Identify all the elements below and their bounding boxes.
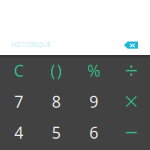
staticText: 6 bbox=[89, 122, 98, 143]
staticText: 4 bbox=[14, 122, 23, 143]
staticText: ) bbox=[57, 60, 62, 81]
button[interactable]: 7 bbox=[0, 86, 37, 117]
staticText: 5 bbox=[52, 122, 61, 143]
button[interactable]: 5 bbox=[37, 117, 75, 148]
button[interactable]: % bbox=[75, 55, 112, 86]
button[interactable]: ( bbox=[37, 55, 75, 86]
staticText: C bbox=[14, 60, 24, 81]
staticText: HISTORIQUE bbox=[11, 40, 51, 49]
button[interactable]: Multiply bbox=[112, 86, 150, 117]
staticText: 7 bbox=[14, 91, 23, 112]
button[interactable]: Divide bbox=[112, 55, 150, 86]
button[interactable]: Delete bbox=[118, 38, 150, 51]
button[interactable]: C bbox=[0, 55, 37, 86]
button[interactable]: 4 bbox=[0, 117, 37, 148]
button[interactable]: 8 bbox=[37, 86, 75, 117]
button[interactable]: 9 bbox=[75, 86, 112, 117]
staticText: 9 bbox=[89, 91, 98, 112]
button[interactable]: 6 bbox=[75, 117, 112, 148]
button[interactable]: HISTORIQUE bbox=[0, 38, 67, 51]
staticText: % bbox=[87, 60, 100, 81]
staticText: ( bbox=[50, 60, 55, 81]
staticText: 8 bbox=[52, 91, 61, 112]
button[interactable]: Minus bbox=[112, 117, 150, 148]
